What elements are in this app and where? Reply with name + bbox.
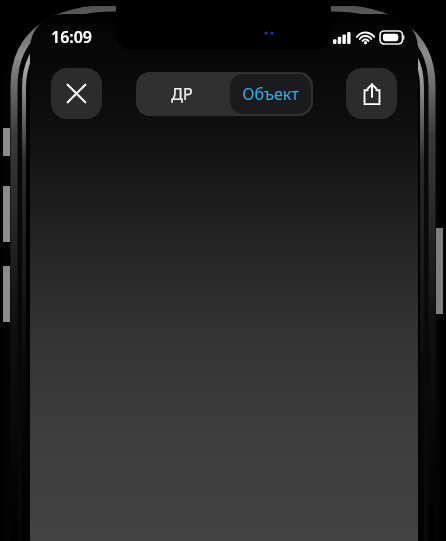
staticText: ДР xyxy=(171,83,193,105)
button[interactable]: Закрыть xyxy=(51,68,102,119)
button[interactable]: Объект xyxy=(230,74,311,114)
staticText: Объект xyxy=(242,83,299,105)
button[interactable]: ДР xyxy=(136,72,228,116)
button[interactable]: Поделиться xyxy=(346,68,397,119)
staticText: 16:09 xyxy=(51,26,93,48)
